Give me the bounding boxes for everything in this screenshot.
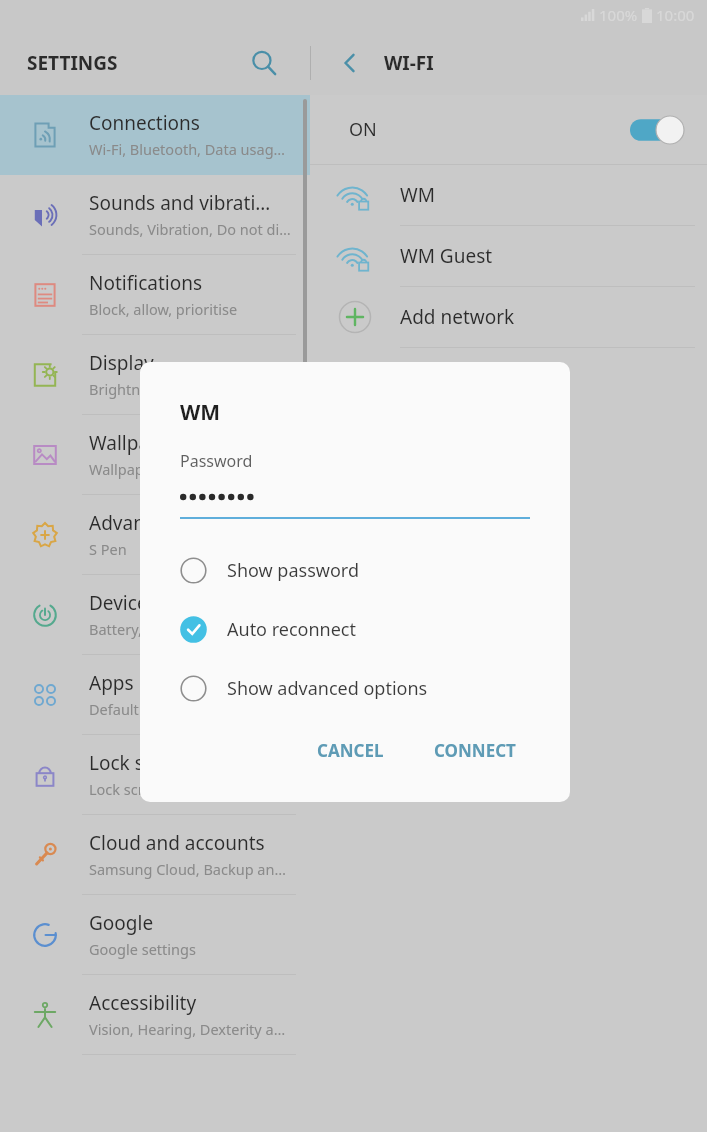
button[interactable]: ON xyxy=(310,95,707,164)
staticText: Connections xyxy=(89,110,200,136)
button[interactable]: Auto reconnect xyxy=(140,600,570,659)
button[interactable]: Back xyxy=(330,43,370,83)
staticText: Apps xyxy=(89,670,134,696)
staticText: CANCEL xyxy=(317,739,384,762)
staticText: Advanced features xyxy=(89,510,256,536)
staticText: 100% xyxy=(599,5,638,25)
staticText: S Pen xyxy=(89,539,127,559)
button[interactable]: Accessibility xyxy=(0,975,310,1055)
staticText: Vision, Hearing, Dexterity a… xyxy=(89,1019,286,1039)
button[interactable]: CONNECT xyxy=(422,729,528,772)
staticText: Wallpapers and themes xyxy=(89,430,292,456)
staticText: ON xyxy=(349,117,377,142)
staticText: 10:00 xyxy=(656,5,695,25)
staticText: Sounds and vibrati… xyxy=(89,190,271,216)
button[interactable]: WM Guest xyxy=(310,226,707,287)
staticText: Google xyxy=(89,910,154,936)
staticText: SETTINGS xyxy=(27,50,118,76)
staticText: WM xyxy=(180,398,221,427)
staticText: CONNECT xyxy=(434,739,516,762)
staticText: Sounds, Vibration, Do not di… xyxy=(89,219,291,239)
staticText: Add network xyxy=(400,304,515,330)
button[interactable]: Advanced features xyxy=(0,495,310,575)
staticText: Lock screen and se… xyxy=(89,750,273,776)
button[interactable]: Wallpapers and themes xyxy=(0,415,310,495)
staticText: WM Guest xyxy=(400,243,493,269)
button[interactable]: Show advanced options xyxy=(140,659,570,718)
staticText: Device maintenance xyxy=(89,590,270,616)
button[interactable]: Display xyxy=(0,335,310,415)
button[interactable]: Apps xyxy=(0,655,310,735)
staticText: Lock screen, Face Recognit… xyxy=(89,779,283,799)
staticText: Notifications xyxy=(89,270,203,296)
staticText: Show advanced options xyxy=(227,676,428,701)
button[interactable]: Lock screen and se… xyxy=(0,735,310,815)
staticText: Block, allow, prioritise xyxy=(89,299,238,319)
staticText: Google settings xyxy=(89,939,196,959)
staticText: Brightness, Blue light filter… xyxy=(89,379,280,399)
button[interactable]: WM xyxy=(310,165,707,226)
staticText: Auto reconnect xyxy=(227,617,356,642)
button[interactable]: Add network xyxy=(310,287,707,348)
button[interactable]: Search xyxy=(242,41,286,85)
staticText: WM xyxy=(400,182,435,208)
staticText: WI-FI xyxy=(384,50,434,76)
staticText: Display xyxy=(89,350,154,376)
button[interactable]: Device maintenance xyxy=(0,575,310,655)
staticText: Password xyxy=(180,450,253,472)
staticText: Wi-Fi, Bluetooth, Data usag… xyxy=(89,139,286,159)
button[interactable]: Connections xyxy=(0,95,310,175)
staticText: Show password xyxy=(227,558,359,583)
staticText: Default apps, App permissio… xyxy=(89,699,292,719)
staticText: Wallpapers, Themes, Icons xyxy=(89,459,271,479)
staticText: Accessibility xyxy=(89,990,197,1016)
button[interactable]: Cloud and accounts xyxy=(0,815,310,895)
button[interactable]: Google xyxy=(0,895,310,975)
button[interactable]: Sounds and vibrati… xyxy=(0,175,310,255)
staticText: Cloud and accounts xyxy=(89,830,265,856)
button[interactable]: Notifications xyxy=(0,255,310,335)
staticText: Samsung Cloud, Backup an… xyxy=(89,859,286,879)
staticText: Battery, Storage, Memory xyxy=(89,619,264,639)
button[interactable]: Show password xyxy=(140,541,570,600)
button[interactable]: CANCEL xyxy=(305,729,396,772)
